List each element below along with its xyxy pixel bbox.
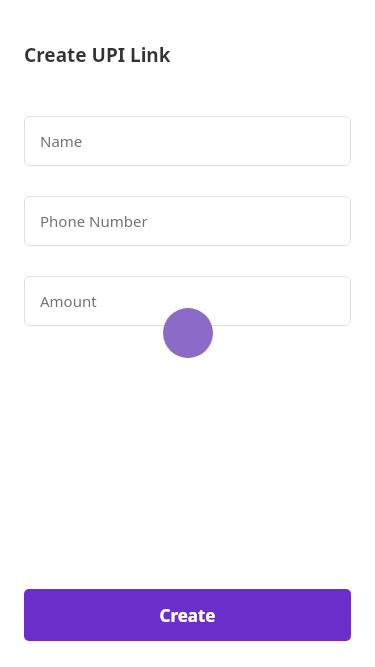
staticText: Phone Number — [40, 211, 148, 231]
staticText: Amount — [40, 291, 97, 311]
staticText: Name — [40, 131, 83, 151]
staticText: Create — [159, 604, 216, 627]
button[interactable]: Create — [24, 589, 351, 641]
button[interactable]: Phone Number — [24, 196, 351, 246]
button[interactable]: Name — [24, 116, 351, 166]
other: Loading — [163, 308, 213, 358]
button[interactable]: Amount — [24, 276, 351, 326]
staticText: Create UPI Link — [24, 42, 171, 68]
